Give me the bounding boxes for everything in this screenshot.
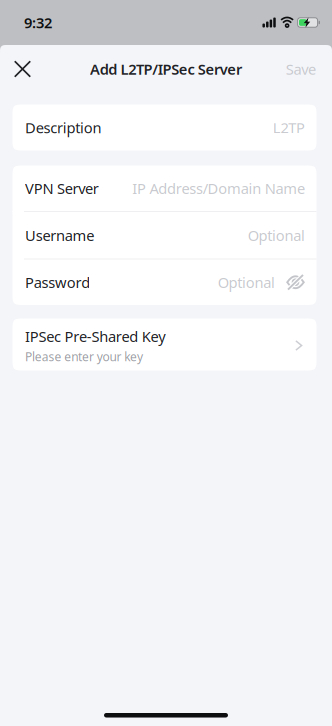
button[interactable]: Save — [276, 46, 326, 91]
staticText: Description — [25, 118, 101, 137]
button[interactable]: Close — [7, 46, 38, 91]
staticText: IPSec Pre-Shared Key — [25, 326, 165, 346]
staticText: Username — [25, 225, 94, 245]
staticText: Optional — [218, 272, 275, 292]
staticText: Please enter your key — [25, 348, 143, 364]
staticText: L2TP — [273, 118, 305, 137]
staticText: Add L2TP/IPSec Server — [90, 59, 242, 79]
staticText: IP Address/Domain Name — [132, 178, 305, 198]
staticText: Save — [286, 59, 316, 79]
button[interactable]: IPSec Pre-Shared Key — [0, 318, 332, 370]
staticText: Optional — [248, 225, 305, 245]
staticText: 9:32 — [24, 13, 52, 32]
staticText: Password — [25, 272, 90, 292]
staticText: VPN Server — [25, 178, 99, 198]
